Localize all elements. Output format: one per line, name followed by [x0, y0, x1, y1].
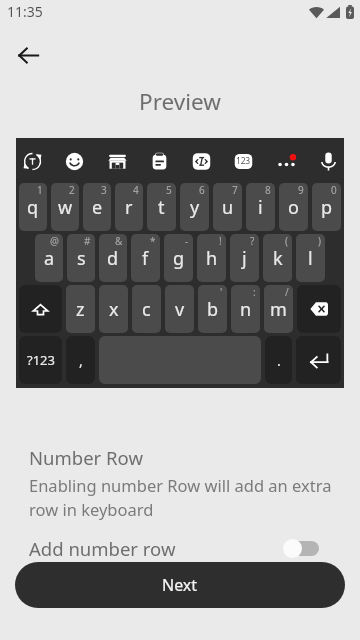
staticText: 3	[101, 183, 107, 197]
staticText: t	[158, 195, 165, 220]
button[interactable]: p	[312, 183, 341, 231]
staticText: k	[273, 246, 283, 271]
button[interactable]: Numbers	[228, 146, 258, 176]
staticText: 2	[69, 183, 75, 197]
button[interactable]: i	[246, 183, 275, 231]
button[interactable]: Add number row	[0, 530, 360, 566]
staticText: 4	[133, 183, 139, 197]
staticText: 123	[236, 155, 250, 167]
staticText: v	[175, 297, 185, 322]
staticText: 0	[331, 183, 337, 197]
button[interactable]: Emoji	[59, 146, 89, 176]
staticText: (	[285, 234, 288, 248]
button[interactable]: w	[51, 183, 79, 231]
staticText: #	[84, 234, 91, 248]
button[interactable]: s	[67, 234, 95, 282]
staticText: c	[142, 297, 151, 322]
button[interactable]: .	[265, 336, 292, 384]
staticText: ?	[250, 234, 255, 248]
button[interactable]: g	[164, 234, 193, 282]
button[interactable]: c	[132, 285, 161, 333]
staticText: p	[321, 195, 333, 220]
button[interactable]: More options	[271, 146, 301, 176]
staticText: /	[285, 285, 289, 299]
button[interactable]: ?123	[19, 336, 62, 384]
staticText: s	[77, 246, 86, 271]
staticText: Number Row	[29, 445, 143, 470]
staticText: )	[318, 234, 321, 248]
button[interactable]: Voice input	[313, 146, 343, 176]
button[interactable]: j	[230, 234, 259, 282]
button[interactable]: f	[131, 234, 160, 282]
button[interactable]: r	[115, 183, 143, 231]
staticText: e	[92, 195, 103, 220]
button[interactable]: t	[147, 183, 176, 231]
button[interactable]: k	[263, 234, 292, 282]
button[interactable]: v	[165, 285, 194, 333]
button[interactable]: Sticker store	[102, 146, 132, 176]
staticText: @	[50, 234, 59, 248]
button[interactable]: n	[231, 285, 260, 333]
button[interactable]: Translate	[17, 146, 47, 176]
staticText: x	[109, 297, 119, 322]
staticText: f	[142, 246, 149, 271]
staticText: q	[27, 195, 39, 220]
staticText: i	[258, 195, 263, 220]
button[interactable]: Back	[6, 33, 50, 77]
button[interactable]: u	[213, 183, 242, 231]
staticText: !	[219, 234, 222, 248]
staticText: 9	[298, 183, 304, 197]
staticText: d	[107, 246, 119, 271]
button[interactable]: e	[83, 183, 111, 231]
staticText: r	[125, 195, 133, 220]
button[interactable]: z	[66, 285, 95, 333]
staticText: Enabling number Row will add an extra ro…	[29, 474, 337, 521]
staticText: 8	[265, 183, 271, 197]
staticText: b	[207, 297, 219, 322]
button[interactable]: Enter	[296, 336, 341, 384]
staticText: n	[240, 297, 252, 322]
staticText: m	[270, 297, 287, 322]
button[interactable]: l	[296, 234, 325, 282]
staticText: 11:35	[7, 2, 43, 21]
staticText: ?123	[27, 351, 55, 369]
staticText: &	[115, 234, 123, 248]
staticText: j	[242, 246, 247, 271]
staticText: 6	[199, 183, 205, 197]
button[interactable]: Next	[15, 562, 345, 608]
staticText: Preview	[0, 86, 360, 117]
button[interactable]: Shift	[19, 285, 62, 333]
staticText: l	[308, 246, 313, 271]
staticText: 5	[166, 183, 172, 197]
staticText: :	[253, 285, 256, 299]
button[interactable]: Add number row toggle	[283, 535, 319, 561]
staticText: .	[277, 351, 281, 370]
staticText: Add number row	[29, 536, 176, 561]
staticText: w	[58, 195, 73, 220]
staticText: *	[150, 234, 156, 248]
staticText: 7	[232, 183, 238, 197]
button[interactable]: y	[180, 183, 209, 231]
staticText: a	[44, 246, 55, 271]
button[interactable]: q	[19, 183, 47, 231]
staticText: g	[173, 246, 185, 271]
staticText: h	[206, 246, 218, 271]
button[interactable]: d	[99, 234, 127, 282]
staticText: ,	[79, 351, 83, 370]
button[interactable]: o	[279, 183, 308, 231]
button[interactable]: Text editing	[186, 146, 216, 176]
staticText: z	[76, 297, 85, 322]
staticText: Next	[162, 574, 198, 596]
staticText: -	[185, 234, 189, 248]
staticText: 1	[37, 183, 43, 197]
button[interactable]: ,	[66, 336, 95, 384]
button[interactable]: m	[264, 285, 293, 333]
staticText: o	[288, 195, 299, 220]
button[interactable]: h	[197, 234, 226, 282]
button[interactable]: b	[198, 285, 227, 333]
button[interactable]: Clipboard	[144, 146, 174, 176]
button[interactable]: x	[99, 285, 128, 333]
button[interactable]: Backspace	[297, 285, 341, 333]
button[interactable]: a	[35, 234, 63, 282]
